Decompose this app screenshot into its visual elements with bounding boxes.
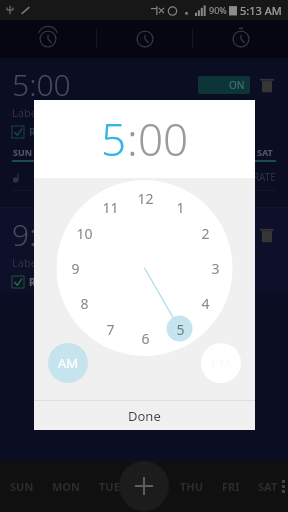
staticText: 7 bbox=[106, 320, 115, 338]
staticText: 8 bbox=[80, 294, 89, 312]
staticText: 5 bbox=[101, 109, 127, 169]
button[interactable]: Delete alarm bbox=[258, 226, 276, 244]
staticText: 2 bbox=[201, 224, 210, 242]
button[interactable]: WED bbox=[133, 146, 155, 162]
button[interactable]: 6 bbox=[134, 329, 156, 347]
button[interactable]: 5 bbox=[101, 109, 127, 169]
staticText: 5 bbox=[176, 320, 185, 338]
staticText: 12 bbox=[137, 189, 154, 207]
button[interactable]: 10 bbox=[73, 224, 95, 242]
button[interactable]: MON bbox=[52, 479, 81, 494]
button[interactable]: Collapse bbox=[12, 195, 276, 205]
button[interactable]: Alarm bbox=[0, 20, 96, 58]
staticText: SUN bbox=[13, 146, 33, 158]
button[interactable]: SAT bbox=[254, 146, 276, 162]
staticText: 5:13 AM bbox=[240, 3, 282, 18]
staticText: 9:00 bbox=[12, 214, 71, 255]
button[interactable]: ON bbox=[198, 226, 250, 244]
staticText: SAT bbox=[258, 479, 278, 494]
staticText: 5:00 bbox=[12, 64, 71, 105]
staticText: Done bbox=[128, 407, 161, 425]
button[interactable]: 7 bbox=[99, 320, 121, 338]
button[interactable]: THU bbox=[174, 146, 196, 162]
staticText: 3 bbox=[211, 259, 220, 277]
staticText: ON bbox=[229, 78, 245, 92]
button[interactable]: TUE bbox=[99, 479, 120, 494]
staticText: 90% bbox=[209, 4, 227, 16]
button[interactable]: 00 bbox=[138, 109, 189, 169]
button[interactable]: SUN bbox=[12, 146, 34, 162]
button[interactable]: 2 bbox=[194, 224, 216, 242]
button[interactable]: REPEAT bbox=[12, 275, 65, 289]
button[interactable]: SAT bbox=[258, 479, 278, 494]
staticText: THU bbox=[176, 146, 195, 158]
staticText: 10 bbox=[76, 224, 93, 242]
button[interactable]: Clock bbox=[97, 20, 192, 58]
button[interactable]: AM bbox=[48, 343, 88, 383]
button[interactable]: REPEAT bbox=[12, 125, 65, 139]
button[interactable]: 12 bbox=[134, 189, 156, 207]
staticText: 6 bbox=[141, 329, 150, 347]
button[interactable]: SUN bbox=[10, 479, 34, 494]
staticText: FRI bbox=[222, 479, 240, 494]
button[interactable]: PM bbox=[201, 343, 241, 383]
staticText: THU bbox=[180, 479, 204, 494]
button[interactable]: 11 bbox=[99, 198, 121, 216]
staticText: WED bbox=[134, 146, 155, 158]
staticText: MON bbox=[52, 479, 81, 494]
staticText: Label bbox=[12, 105, 40, 120]
button[interactable]: 4 bbox=[194, 294, 216, 312]
button[interactable]: 3 bbox=[204, 259, 226, 277]
staticText: 1 bbox=[176, 198, 185, 216]
staticText: VIBRATE bbox=[237, 170, 276, 184]
button[interactable]: 8 bbox=[73, 294, 95, 312]
button[interactable]: Done bbox=[34, 401, 255, 430]
button[interactable]: TUE bbox=[93, 146, 115, 162]
staticText: 9 bbox=[71, 259, 80, 277]
button[interactable]: Add alarm bbox=[119, 461, 169, 511]
button[interactable]: THU bbox=[180, 479, 204, 494]
button[interactable]: 9 bbox=[64, 259, 86, 277]
button[interactable]: FRI bbox=[222, 479, 240, 494]
staticText: TUE bbox=[95, 146, 113, 158]
staticText: SAT bbox=[257, 146, 273, 158]
staticText: REPEAT bbox=[29, 275, 65, 289]
staticText: 11 bbox=[102, 198, 119, 216]
button[interactable]: WED bbox=[138, 479, 163, 494]
staticText: Label bbox=[12, 255, 40, 270]
staticText: TUE bbox=[99, 479, 120, 494]
staticText: REPEAT bbox=[29, 125, 65, 139]
button[interactable]: Timer bbox=[193, 20, 288, 58]
button[interactable]: ON bbox=[198, 76, 250, 94]
button[interactable]: 5 bbox=[169, 320, 191, 338]
staticText: 00 bbox=[138, 109, 189, 169]
staticText: WED bbox=[138, 479, 163, 494]
button[interactable]: 1 bbox=[169, 198, 191, 216]
button[interactable]: Delete alarm bbox=[258, 76, 276, 94]
staticText: SUN bbox=[10, 479, 34, 494]
staticText: AM bbox=[58, 354, 79, 372]
staticText: : bbox=[127, 109, 138, 169]
staticText: 4 bbox=[201, 294, 210, 312]
